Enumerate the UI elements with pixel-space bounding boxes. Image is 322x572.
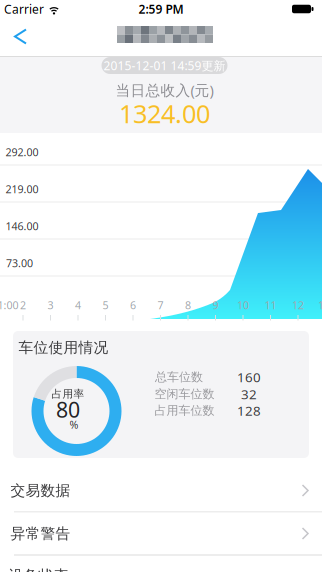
staticText: 1324.00 bbox=[119, 97, 210, 130]
staticText: 219.00 bbox=[5, 182, 38, 196]
staticText: 占用率 bbox=[51, 387, 84, 400]
staticText: 占用车位数 bbox=[154, 403, 214, 418]
staticText: 空闲车位数 bbox=[154, 387, 214, 401]
staticText: 32 bbox=[241, 385, 257, 403]
staticText: Carrier bbox=[4, 1, 44, 17]
staticText: 146.00 bbox=[5, 219, 38, 233]
staticText: 11 bbox=[264, 298, 276, 312]
staticText: 1 bbox=[318, 298, 322, 312]
staticText: 160 bbox=[237, 368, 261, 386]
staticText: 8 bbox=[185, 298, 191, 312]
staticText: 128 bbox=[237, 402, 261, 419]
staticText: % bbox=[69, 417, 78, 432]
staticText: 2:59 PM bbox=[138, 1, 183, 17]
staticText: 10 bbox=[237, 298, 249, 312]
staticText: 73.00 bbox=[6, 256, 33, 270]
staticText: 4 bbox=[75, 298, 81, 312]
staticText: 交易数据 bbox=[10, 481, 70, 499]
button[interactable]: Back bbox=[1, 17, 41, 57]
staticText: 9 bbox=[212, 298, 218, 312]
staticText: 设备状态 bbox=[8, 566, 68, 572]
staticText: 6 bbox=[130, 298, 136, 312]
staticText: 总车位数 bbox=[155, 370, 203, 384]
staticText: 当日总收入(元) bbox=[115, 80, 213, 100]
staticText: 292.00 bbox=[5, 145, 38, 159]
staticText: 2015-12-01 14:59更新 bbox=[103, 57, 225, 73]
staticText: 80 bbox=[56, 395, 80, 424]
staticText: 12 bbox=[292, 298, 304, 312]
button[interactable]: 异常警告 bbox=[0, 512, 322, 554]
staticText: 异常警告 bbox=[10, 524, 70, 542]
staticText: 车位使用情况 bbox=[18, 338, 108, 356]
staticText: 1:00 bbox=[0, 298, 18, 312]
staticText: 7 bbox=[157, 298, 163, 312]
staticText: 5 bbox=[102, 298, 108, 312]
staticText: 3 bbox=[47, 298, 53, 312]
staticText: 2 bbox=[20, 298, 26, 312]
button[interactable]: 交易数据 bbox=[0, 469, 322, 511]
